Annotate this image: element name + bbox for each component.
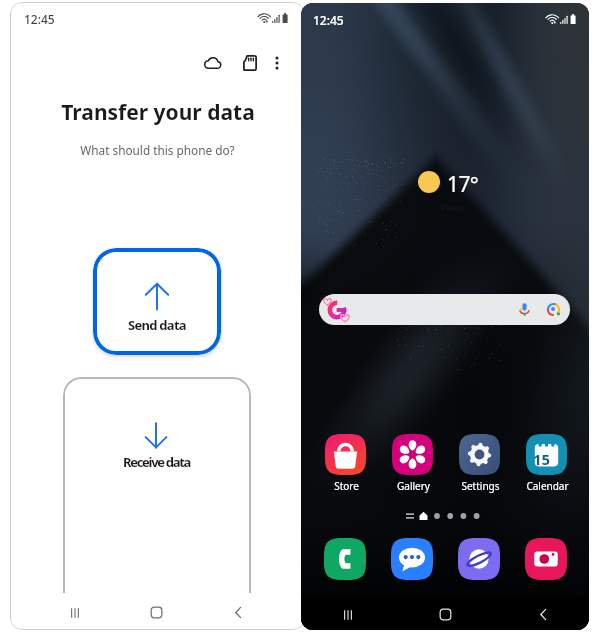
button[interactable]: More options [259, 45, 295, 81]
staticText: Transfer your data [61, 98, 255, 127]
button[interactable]: Store [317, 434, 375, 475]
button[interactable]: Recents [331, 598, 364, 630]
button[interactable]: Send data [93, 248, 221, 355]
button[interactable]: Phone [324, 538, 366, 580]
staticText: Calendar [526, 479, 569, 493]
button[interactable]: Back [527, 598, 560, 630]
staticText: 15 [533, 449, 551, 469]
button[interactable]: Settings [451, 434, 509, 475]
button[interactable]: Receive data [63, 377, 251, 617]
staticText: 12:45 [24, 11, 55, 27]
staticText: Receive data [123, 453, 191, 471]
button[interactable]: Calendar [518, 434, 576, 475]
button[interactable]: Back [221, 595, 256, 630]
staticText: What should this phone do? [80, 142, 235, 158]
button[interactable]: Search [319, 294, 570, 325]
button[interactable]: Home [139, 595, 174, 630]
button[interactable]: Recents [57, 595, 92, 630]
button[interactable]: Camera [525, 538, 567, 580]
button[interactable]: SD card [232, 45, 268, 81]
staticText: Settings [461, 479, 500, 493]
button[interactable]: Internet [458, 538, 500, 580]
button[interactable]: Messages [391, 538, 433, 580]
button[interactable]: Home [429, 598, 462, 630]
staticText: 17° [447, 170, 479, 199]
staticText: 12:45 [313, 12, 344, 28]
staticText: Store [334, 479, 359, 493]
button[interactable]: Cloud transfer [195, 45, 231, 81]
button[interactable]: Gallery [384, 434, 442, 475]
staticText: Send data [128, 316, 186, 334]
staticText: Gallery [397, 479, 430, 493]
staticText: Plano [441, 201, 465, 213]
